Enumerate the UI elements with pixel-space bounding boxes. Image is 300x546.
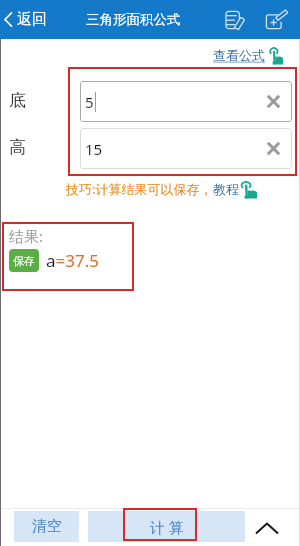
staticText: 高 <box>9 137 26 158</box>
button[interactable]: 15 <box>80 128 292 169</box>
staticText: 保存 <box>13 254 35 268</box>
button[interactable]: 教程 <box>213 180 257 198</box>
staticText: a=37.5 <box>46 249 99 272</box>
staticText: 清空 <box>32 517 62 536</box>
staticText: 5 <box>85 92 94 112</box>
button[interactable]: 5 <box>80 81 292 122</box>
button[interactable]: 清空 <box>14 511 79 542</box>
button[interactable]: New note <box>256 0 296 39</box>
button[interactable]: 计 算 <box>88 511 245 542</box>
staticText: 计 算 <box>150 517 184 537</box>
staticText: 教程 <box>213 181 239 197</box>
staticText: 三角形面积公式 <box>86 11 181 28</box>
staticText: 技巧:计算结果可以保存， <box>66 180 213 198</box>
button[interactable]: 保存 <box>9 249 39 272</box>
button[interactable]: 返回 <box>0 0 55 39</box>
staticText: 底 <box>9 90 26 111</box>
staticText: 结果: <box>9 226 44 246</box>
button[interactable]: Collapse keyboard <box>245 508 300 546</box>
button[interactable]: Edit notes <box>214 0 254 39</box>
staticText: 15 <box>85 139 103 159</box>
staticText: 查看公式 <box>213 47 265 63</box>
button[interactable]: 查看公式 <box>211 44 285 66</box>
staticText: 返回 <box>17 10 47 29</box>
